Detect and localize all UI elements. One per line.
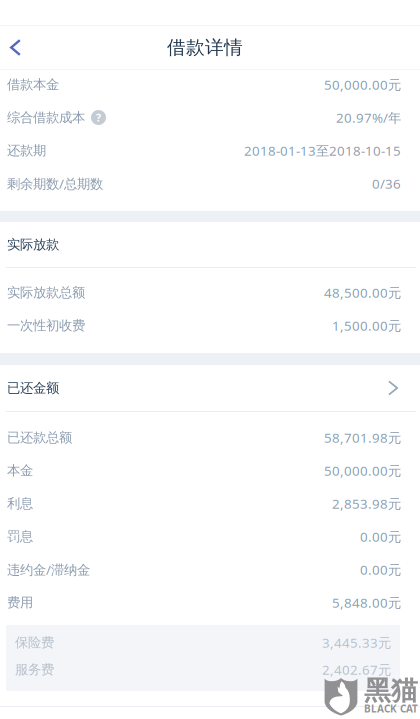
staticText: 保险费 [15, 634, 54, 651]
staticText: 0.00元 [360, 527, 401, 546]
staticText: 违约金/滞纳金 [7, 560, 90, 579]
staticText: 剩余期数/总期数 [7, 174, 103, 193]
button[interactable]: 已还金额 [0, 365, 420, 411]
staticText: 2018-01-13至2018-10-15 [244, 141, 401, 160]
staticText: 本金 [7, 462, 33, 479]
staticText: 3,445.33元 [322, 633, 391, 652]
staticText: 费用 [7, 594, 33, 611]
staticText: 实际放款 [7, 236, 59, 253]
staticText: 1,500.00元 [332, 316, 401, 335]
staticText: 一次性初收费 [7, 317, 85, 334]
staticText: 黑猫 [364, 674, 418, 707]
staticText: 实际放款总额 [7, 284, 85, 301]
button[interactable]: Back [0, 26, 47, 69]
staticText: 借款详情 [167, 36, 243, 59]
staticText: 50,000.00元 [324, 461, 401, 480]
staticText: 综合借款成本 [7, 109, 85, 126]
staticText: 0.00元 [360, 560, 401, 579]
staticText: 借款本金 [7, 76, 59, 93]
staticText: 已还款总额 [7, 429, 72, 446]
staticText: 20.97%/年 [336, 108, 401, 127]
staticText: 48,500.00元 [324, 283, 401, 302]
staticText: 58,701.98元 [324, 428, 401, 447]
staticText: 2,402.67元 [322, 660, 391, 679]
staticText: BLACK CAT [364, 702, 418, 715]
staticText: 2,853.98元 [332, 494, 401, 513]
staticText: 0/36 [372, 174, 401, 193]
staticText: 5,848.00元 [332, 593, 401, 612]
staticText: 50,000.00元 [324, 75, 401, 94]
staticText: 利息 [7, 495, 33, 512]
staticText: 罚息 [7, 528, 33, 545]
staticText: ? [96, 110, 101, 125]
staticText: 已还金额 [7, 380, 59, 396]
staticText: 服务费 [15, 661, 54, 678]
staticText: 还款期 [7, 142, 46, 159]
